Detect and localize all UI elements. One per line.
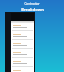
staticText: Contractor — [24, 2, 40, 6]
staticText: Breakdown — [21, 7, 44, 12]
